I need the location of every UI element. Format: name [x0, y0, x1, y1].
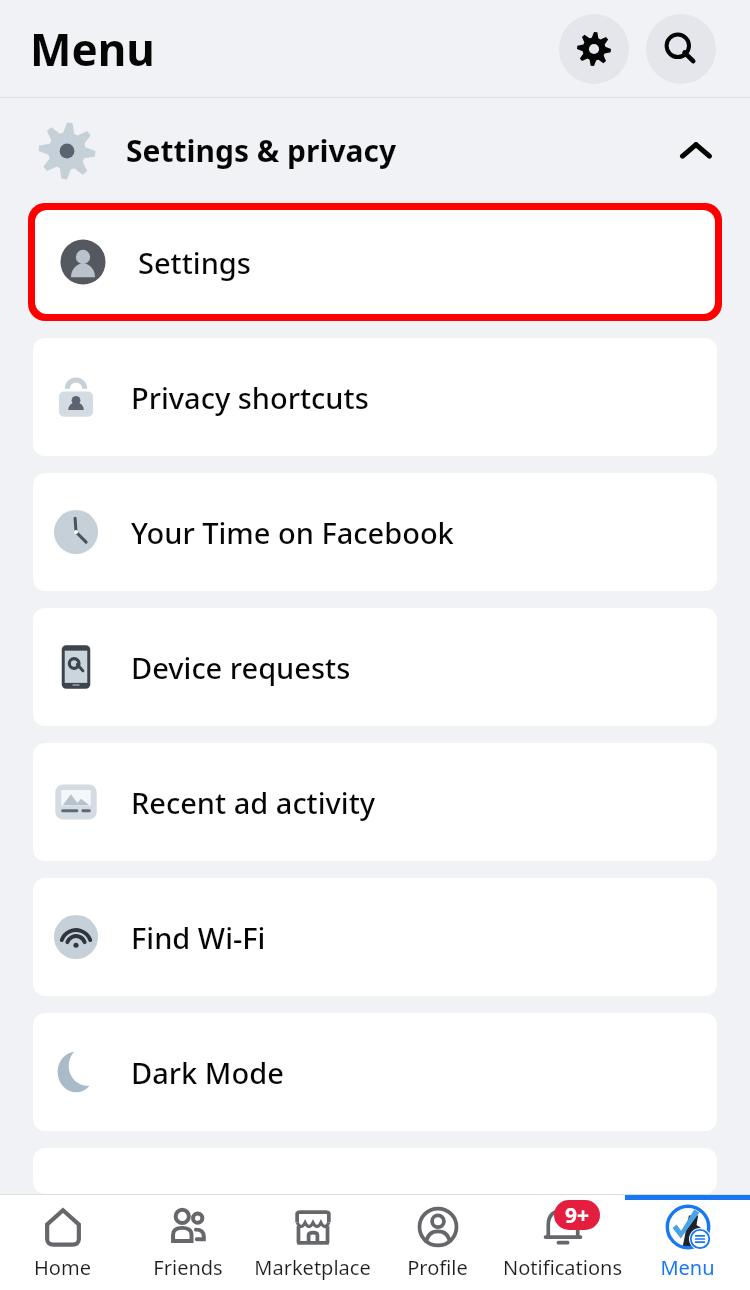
staticText: Profile — [407, 1254, 468, 1281]
button[interactable]: Your Time on Facebook — [33, 473, 717, 591]
button[interactable]: Profile — [375, 1195, 500, 1290]
staticText: Notifications — [503, 1254, 622, 1281]
staticText: Your Time on Facebook — [131, 513, 454, 552]
button[interactable]: Device requests — [33, 608, 717, 726]
staticText: Device requests — [131, 648, 351, 687]
staticText: Find Wi-Fi — [131, 918, 266, 957]
button[interactable]: Marketplace — [250, 1195, 375, 1290]
staticText: 9+ — [565, 1201, 590, 1230]
button[interactable]: Settings — [559, 14, 629, 84]
staticText: Settings — [138, 243, 251, 282]
button[interactable]: Menu — [625, 1195, 750, 1290]
staticText: Recent ad activity — [131, 783, 376, 822]
button[interactable]: Settings & privacy — [0, 98, 750, 203]
staticText: Settings & privacy — [126, 130, 397, 171]
staticText: Home — [34, 1254, 91, 1281]
staticText: Privacy shortcuts — [131, 378, 369, 417]
button[interactable]: Home — [0, 1195, 125, 1290]
button[interactable]: Dark Mode — [33, 1013, 717, 1131]
staticText: Marketplace — [254, 1254, 371, 1281]
button[interactable]: Friends — [125, 1195, 250, 1290]
button[interactable]: Recent ad activity — [33, 743, 717, 861]
staticText: Friends — [153, 1254, 223, 1281]
button[interactable]: Search — [646, 14, 716, 84]
button[interactable]: Settings — [35, 210, 715, 314]
button[interactable]: 9+ — [500, 1195, 625, 1290]
staticText: Menu — [30, 19, 155, 79]
staticText: Menu — [660, 1254, 715, 1281]
button[interactable]: Privacy shortcuts — [33, 338, 717, 456]
staticText: Dark Mode — [131, 1053, 284, 1092]
button[interactable]: Find Wi-Fi — [33, 878, 717, 996]
